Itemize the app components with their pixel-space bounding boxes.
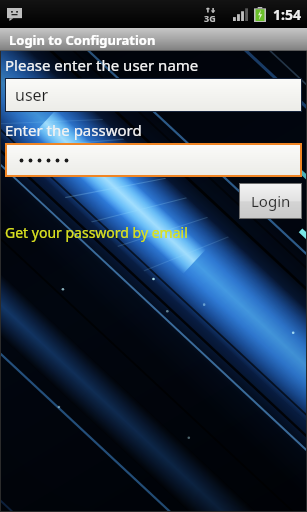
staticText: 1:54 xyxy=(273,5,301,24)
staticText: 3G xyxy=(204,12,216,24)
button[interactable]: Get your password by email xyxy=(5,223,188,242)
staticText: Get your password by email xyxy=(5,223,188,242)
button[interactable]: user xyxy=(5,78,302,112)
staticText: Login xyxy=(251,191,291,211)
staticText: Login to Configuration xyxy=(9,31,156,49)
button[interactable]: Login xyxy=(239,183,302,219)
button[interactable] xyxy=(5,143,302,177)
staticText: Enter the password xyxy=(5,120,142,140)
staticText: user xyxy=(15,84,49,106)
staticText: Please enter the user name xyxy=(5,55,199,75)
